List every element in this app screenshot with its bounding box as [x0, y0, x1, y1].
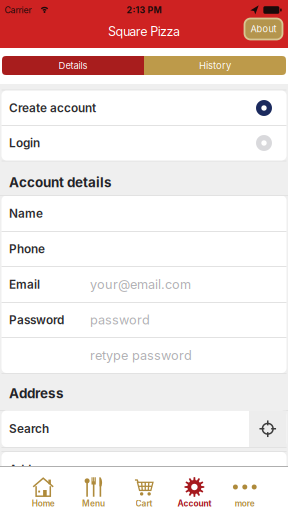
button[interactable]: more [220, 466, 270, 512]
button[interactable]: Use current location [249, 410, 286, 447]
staticText: Account details [9, 174, 112, 191]
button[interactable]: History [144, 56, 286, 75]
staticText: retype password [90, 348, 192, 363]
staticText: About [250, 23, 276, 34]
staticText: History [199, 60, 231, 71]
button[interactable]: Menu [68, 466, 119, 512]
button[interactable]: Create account [0, 90, 288, 125]
staticText: Address [9, 462, 54, 477]
staticText: Address [9, 385, 64, 402]
staticText: your@email.com [90, 277, 191, 292]
staticText: more [235, 498, 255, 508]
staticText: Login [9, 136, 40, 150]
staticText: password [90, 312, 150, 328]
staticText: 2:13 PM [126, 5, 161, 15]
staticText: Phone [9, 242, 45, 256]
staticText: Cart [135, 498, 152, 508]
staticText: Create account [9, 101, 96, 115]
staticText: Menu [82, 498, 105, 508]
staticText: Name [9, 206, 43, 221]
button[interactable]: Details [2, 56, 144, 75]
staticText: Email [9, 277, 40, 292]
button[interactable]: Account [169, 466, 220, 512]
button[interactable]: Home [18, 466, 68, 512]
staticText: Account [177, 498, 211, 508]
button[interactable]: Cart [119, 466, 169, 512]
button[interactable]: Login [0, 125, 288, 160]
staticText: Password [9, 313, 64, 327]
staticText: Square Pizza [108, 24, 180, 39]
staticText: Carrier [4, 5, 31, 15]
button[interactable]: About [244, 18, 282, 39]
staticText: Details [58, 60, 87, 71]
staticText: Search [9, 422, 49, 436]
staticText: Home [32, 498, 55, 508]
